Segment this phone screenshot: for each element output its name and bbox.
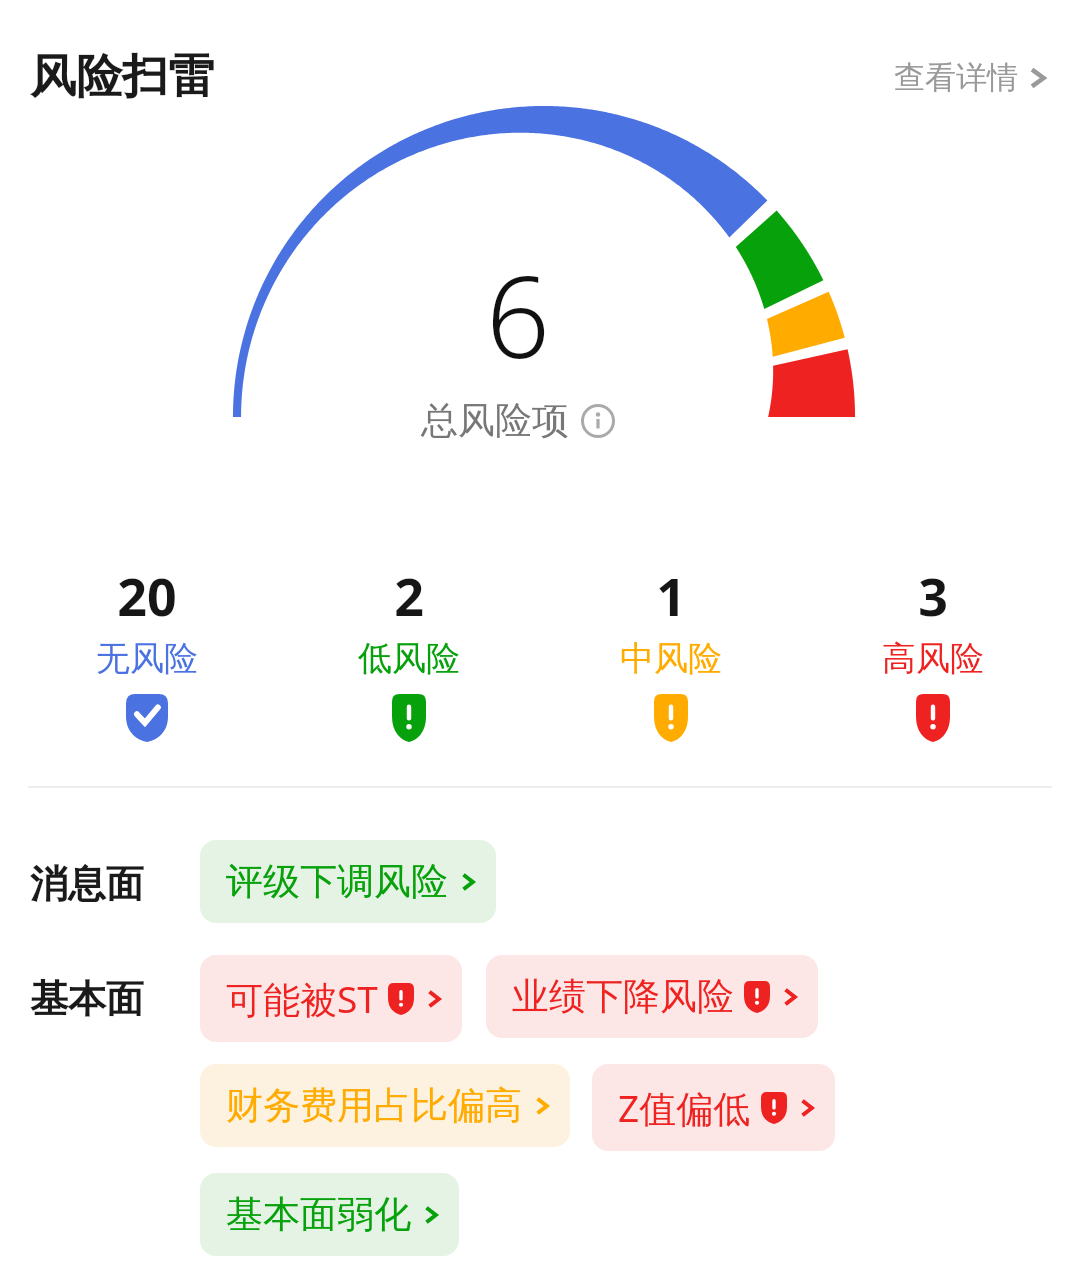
- staticText: 可能被ST: [226, 973, 378, 1024]
- staticText: Z值偏低: [618, 1082, 751, 1133]
- staticText: 基本面弱化: [226, 1191, 411, 1238]
- button[interactable]: 财务费用占比偏高: [200, 1064, 570, 1147]
- staticText: 低风险: [358, 637, 460, 680]
- button[interactable]: 2: [278, 558, 540, 744]
- button[interactable]: 基本面弱化: [200, 1173, 459, 1256]
- staticText: 6: [486, 238, 550, 391]
- staticText: 财务费用占比偏高: [226, 1082, 522, 1129]
- button[interactable]: 评级下调风险: [200, 840, 496, 923]
- button[interactable]: Z值偏低: [592, 1064, 835, 1151]
- staticText: 3: [918, 560, 948, 631]
- button[interactable]: 20: [16, 558, 278, 744]
- button[interactable]: 1: [540, 558, 802, 744]
- staticText: 1: [656, 560, 686, 631]
- staticText: 基本面: [30, 975, 200, 1023]
- staticText: 总风险项: [421, 397, 569, 444]
- staticText: 中风险: [620, 637, 722, 680]
- staticText: 无风险: [96, 637, 198, 680]
- staticText: 20: [117, 560, 177, 631]
- button[interactable]: 说明: [581, 404, 615, 438]
- button[interactable]: 3: [802, 558, 1064, 744]
- button[interactable]: 查看详情: [890, 52, 1052, 103]
- staticText: 业绩下降风险: [512, 973, 734, 1020]
- staticText: 评级下调风险: [226, 858, 448, 905]
- button[interactable]: 可能被ST: [200, 955, 462, 1042]
- staticText: 消息面: [30, 860, 200, 908]
- staticText: 2: [394, 560, 424, 631]
- button[interactable]: 业绩下降风险: [486, 955, 818, 1038]
- staticText: 高风险: [882, 637, 984, 680]
- staticText: 风险扫雷: [30, 48, 214, 106]
- staticText: 查看详情: [894, 58, 1018, 97]
